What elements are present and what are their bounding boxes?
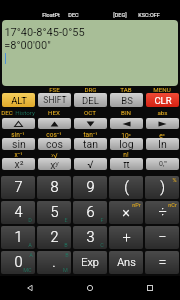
- staticText: HEX: [48, 109, 60, 116]
- staticText: sin: [12, 138, 26, 150]
- staticText: xʸ: [50, 158, 59, 170]
- staticText: tan⁻¹: [83, 131, 98, 138]
- staticText: 10ˣ: [121, 131, 131, 138]
- button[interactable]: DEL: [74, 93, 107, 107]
- button[interactable]: 2: [37, 226, 71, 249]
- staticText: cos⁻¹: [46, 131, 62, 138]
- staticText: Ans: [117, 256, 136, 269]
- staticText: eˣ: [159, 131, 165, 138]
- staticText: ): [160, 179, 165, 196]
- button[interactable]: Home: [60, 276, 120, 300]
- staticText: KSC:OFF: [138, 12, 160, 18]
- staticText: −: [158, 229, 167, 246]
- button[interactable]: 5: [37, 201, 71, 224]
- staticText: 6: [86, 204, 95, 221]
- button[interactable]: Down: [74, 118, 107, 129]
- staticText: F: [100, 217, 104, 223]
- button[interactable]: ln: [146, 138, 179, 150]
- staticText: 0,'": [159, 160, 167, 168]
- staticText: +: [122, 229, 131, 246]
- staticText: 0: [14, 254, 23, 271]
- staticText: TAB: [120, 86, 132, 93]
- button[interactable]: 9: [73, 176, 107, 199]
- staticText: B: [65, 252, 69, 258]
- button[interactable]: ×: [109, 201, 143, 224]
- staticText: =8°00'00": [4, 39, 51, 52]
- button[interactable]: xʸ: [38, 158, 71, 170]
- staticText: CLR: [154, 95, 172, 106]
- staticText: FloatPt: [42, 12, 60, 18]
- staticText: nPr: [132, 202, 141, 208]
- button[interactable]: Ans: [109, 251, 143, 274]
- staticText: C: [100, 242, 104, 248]
- staticText: abs: [157, 109, 168, 116]
- button[interactable]: =: [145, 251, 179, 274]
- staticText: MENU: [153, 86, 171, 93]
- staticText: A: [28, 242, 32, 248]
- button[interactable]: ALT: [2, 93, 35, 107]
- staticText: DEC: [68, 12, 79, 18]
- button[interactable]: 0: [1, 251, 35, 274]
- button[interactable]: 4: [1, 201, 35, 224]
- button[interactable]: Exp: [73, 251, 107, 274]
- staticText: SHIFT: [43, 95, 67, 105]
- staticText: 2: [50, 229, 59, 246]
- staticText: History: [15, 109, 35, 116]
- button[interactable]: SHIFT: [38, 93, 71, 107]
- button[interactable]: (: [109, 176, 143, 199]
- button[interactable]: Left: [110, 118, 143, 129]
- button[interactable]: cos: [38, 138, 71, 150]
- button[interactable]: Up: [38, 118, 71, 129]
- button[interactable]: x²: [2, 158, 35, 170]
- staticText: n!: [123, 151, 129, 158]
- button[interactable]: 3: [73, 226, 107, 249]
- button[interactable]: 6: [73, 201, 107, 224]
- button[interactable]: 8: [37, 176, 71, 199]
- staticText: 17°40-8°45-0°55: [4, 26, 85, 39]
- button[interactable]: √: [74, 158, 107, 170]
- button[interactable]: 7: [1, 176, 35, 199]
- button[interactable]: Recents: [120, 276, 180, 300]
- staticText: 9: [86, 179, 95, 196]
- staticText: MC: [23, 267, 32, 273]
- staticText: BS: [121, 95, 133, 106]
- staticText: A: [29, 252, 33, 258]
- button[interactable]: sin: [2, 138, 35, 150]
- staticText: D: [28, 217, 32, 223]
- button[interactable]: Back: [0, 276, 60, 300]
- staticText: ln: [158, 138, 167, 150]
- staticText: [DEG]: [113, 12, 127, 18]
- staticText: 5: [50, 204, 59, 221]
- staticText: (: [124, 179, 129, 196]
- staticText: 3: [86, 229, 95, 246]
- staticText: E: [64, 217, 68, 223]
- button[interactable]: log: [110, 138, 143, 150]
- staticText: tan: [83, 138, 98, 150]
- staticText: √: [87, 158, 94, 170]
- button[interactable]: .: [37, 251, 71, 274]
- staticText: M: [63, 267, 68, 273]
- staticText: x²: [14, 158, 24, 170]
- staticText: FSE: [49, 86, 60, 93]
- staticText: x⁻¹: [14, 151, 23, 158]
- button[interactable]: BS: [110, 93, 143, 107]
- button[interactable]: Right: [146, 118, 179, 129]
- button[interactable]: 1: [1, 226, 35, 249]
- staticText: 8: [50, 179, 59, 196]
- button[interactable]: −: [145, 226, 179, 249]
- button[interactable]: CLR: [146, 93, 179, 107]
- staticText: ×: [122, 204, 130, 221]
- button[interactable]: ): [145, 176, 179, 199]
- staticText: Exp: [81, 256, 99, 269]
- button[interactable]: Cursor up: [2, 118, 35, 129]
- staticText: π: [123, 158, 130, 170]
- staticText: OCT: [84, 109, 96, 116]
- button[interactable]: +: [109, 226, 143, 249]
- button[interactable]: tan: [74, 138, 107, 150]
- staticText: cos: [46, 138, 63, 150]
- staticText: ALT: [11, 95, 27, 106]
- button[interactable]: ÷: [145, 201, 179, 224]
- button[interactable]: 0,'": [146, 158, 179, 170]
- button[interactable]: π: [110, 158, 143, 170]
